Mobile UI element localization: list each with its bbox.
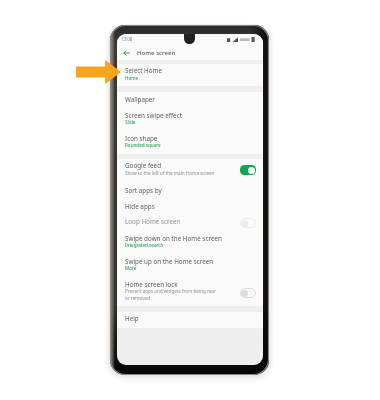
- staticText: Icon shape: [125, 134, 158, 143]
- button[interactable]: Hide apps: [117, 199, 263, 215]
- staticText: Hide apps: [125, 202, 155, 211]
- button[interactable]: Swipe up on the Home screen: [117, 254, 263, 276]
- staticText: Slide: [125, 119, 255, 125]
- button[interactable]: Google feed switch: [240, 165, 256, 175]
- staticText: 13:08: [121, 36, 133, 42]
- button[interactable]: Loop Home screen: [117, 215, 263, 231]
- staticText: Sort apps by: [125, 186, 162, 195]
- staticText: Google feed: [125, 161, 162, 170]
- staticText: Home: [125, 75, 255, 81]
- button[interactable]: Screen swipe effect: [117, 108, 263, 131]
- button[interactable]: Google feed: [117, 159, 263, 182]
- button[interactable]: Select Home: [117, 64, 263, 86]
- staticText: Help: [125, 314, 139, 323]
- staticText: Swipe up on the Home screen: [125, 257, 214, 266]
- staticText: Swipe down on the Home screen: [125, 234, 222, 243]
- staticText: More: [125, 265, 255, 271]
- button[interactable]: Help: [117, 312, 263, 328]
- staticText: Integrated search: [125, 242, 255, 248]
- staticText: Show to the left of the main Home screen: [125, 170, 255, 176]
- staticText: Rounded square: [125, 142, 255, 148]
- staticText: Home screen: [137, 48, 176, 56]
- button[interactable]: Home screen lock: [117, 277, 263, 307]
- button[interactable]: Loop Home screen switch: [240, 218, 256, 228]
- button[interactable]: Wallpaper: [117, 92, 263, 108]
- staticText: Wallpaper: [125, 95, 155, 104]
- staticText: Home screen lock: [125, 280, 178, 289]
- button[interactable]: Back: [121, 47, 132, 58]
- button[interactable]: Home screen lock switch: [240, 288, 256, 298]
- button[interactable]: Sort apps by: [117, 183, 263, 199]
- button[interactable]: Swipe down on the Home screen: [117, 231, 263, 255]
- button[interactable]: Icon shape: [117, 131, 263, 155]
- staticText: Select Home: [125, 66, 163, 75]
- staticText: or removed: [125, 295, 150, 301]
- staticText: Loop Home screen: [125, 217, 181, 226]
- staticText: Screen swipe effect: [125, 111, 182, 120]
- staticText: Prevent apps and widgets from being rear…: [125, 288, 216, 294]
